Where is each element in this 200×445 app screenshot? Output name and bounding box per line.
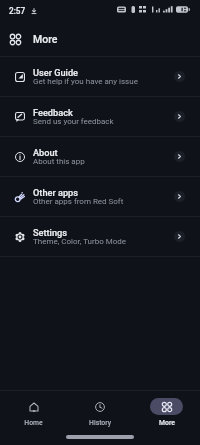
staticText: About this app xyxy=(33,157,85,166)
staticText: History xyxy=(89,419,111,427)
staticText: Send us your feedback xyxy=(33,117,114,126)
button[interactable]: Other apps xyxy=(0,177,200,216)
button[interactable]: History xyxy=(66,398,133,430)
staticText: More xyxy=(159,419,175,427)
button[interactable]: More xyxy=(133,398,200,430)
staticText: More xyxy=(33,33,58,45)
staticText: Theme, Color, Turbo Mode xyxy=(33,237,127,246)
staticText: Home xyxy=(24,419,43,427)
staticText: Settings xyxy=(33,227,68,238)
staticText: Get help if you have any issue xyxy=(33,77,138,86)
button[interactable]: Settings xyxy=(0,217,200,256)
staticText: 2:57 xyxy=(9,6,26,16)
staticText: Feedback xyxy=(33,107,73,118)
button[interactable]: Feedback xyxy=(0,97,200,136)
staticText: Other apps xyxy=(33,187,79,198)
button[interactable]: User Guide xyxy=(0,57,200,96)
staticText: User Guide xyxy=(33,67,79,78)
button[interactable]: About xyxy=(0,137,200,176)
staticText: Other apps from Red Soft xyxy=(33,197,124,206)
staticText: About xyxy=(33,147,58,158)
button[interactable]: Home xyxy=(0,398,66,430)
